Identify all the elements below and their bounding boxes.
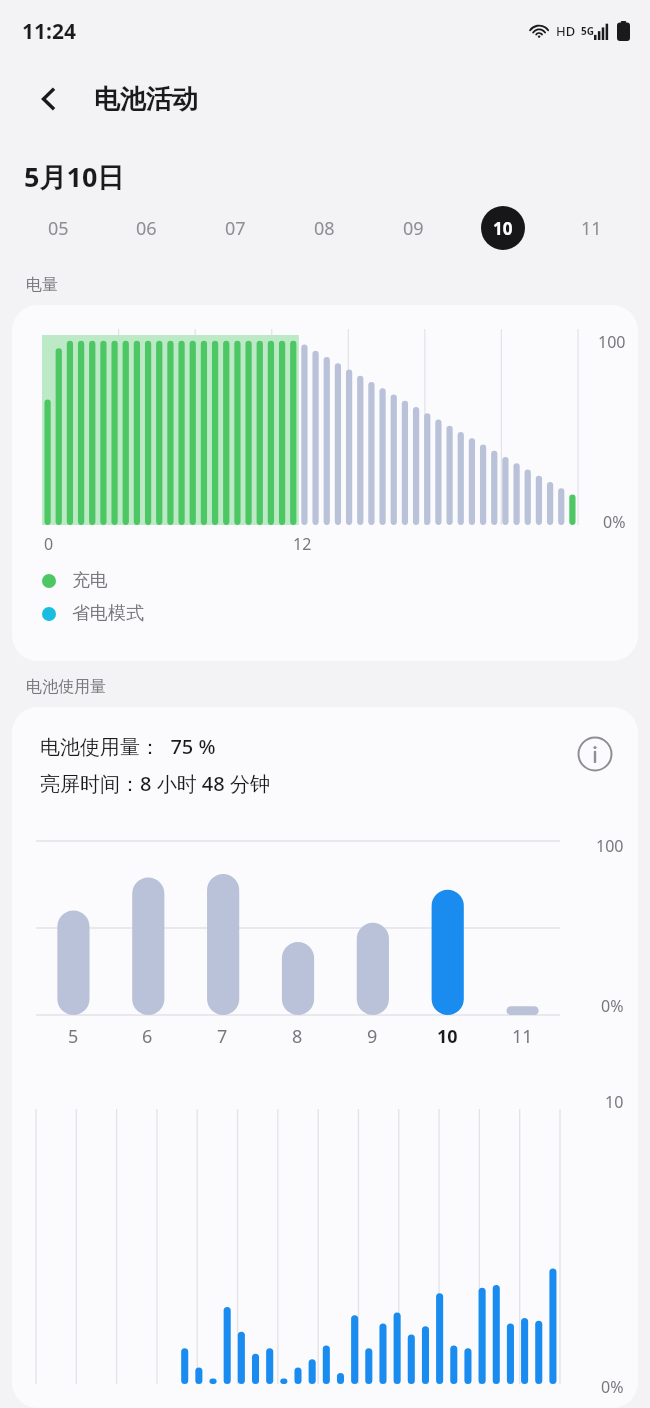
staticText: 5月10日 — [24, 158, 125, 195]
staticText: 100 — [596, 835, 624, 857]
staticText: 8 — [292, 1024, 303, 1049]
staticText: 电池使用量 — [26, 677, 106, 697]
staticText: 5G — [581, 24, 594, 38]
button[interactable]: 10 — [458, 195, 547, 261]
staticText: 亮屏时间：8 小时 48 分钟 — [40, 770, 270, 797]
staticText: 09 — [403, 216, 424, 241]
staticText: 100 — [598, 331, 626, 353]
button[interactable]: 05 — [14, 195, 102, 261]
staticText: 10 — [437, 1024, 458, 1049]
staticText: 10 — [493, 217, 513, 240]
staticText: 电量 — [26, 275, 58, 295]
staticText: 06 — [136, 216, 157, 241]
button[interactable]: Back — [26, 76, 72, 122]
staticText: 充电 — [72, 569, 108, 592]
staticText: 12 — [293, 533, 312, 555]
staticText: 0 — [44, 533, 54, 555]
staticText: 11:24 — [22, 17, 76, 46]
button[interactable]: 06 — [102, 195, 191, 261]
button[interactable]: 09 — [369, 195, 458, 261]
staticText: 11 — [581, 216, 602, 241]
staticText: 9 — [367, 1024, 378, 1049]
staticText: 5 — [68, 1024, 79, 1049]
staticText: 07 — [225, 216, 246, 241]
staticText: 0% — [601, 995, 624, 1017]
staticText: 05 — [48, 216, 69, 241]
button[interactable]: 11 — [547, 195, 636, 261]
button[interactable]: Info — [574, 733, 616, 775]
staticText: 0% — [603, 511, 626, 533]
staticText: 08 — [314, 216, 335, 241]
staticText: 11 — [512, 1024, 533, 1049]
button[interactable]: 07 — [191, 195, 280, 261]
staticText: 6 — [142, 1024, 153, 1049]
staticText: 7 — [217, 1024, 228, 1049]
staticText: HD — [556, 22, 576, 40]
staticText: 0% — [601, 1376, 624, 1398]
staticText: 10 — [605, 1091, 624, 1113]
button[interactable]: 08 — [280, 195, 369, 261]
staticText: 电池活动 — [94, 83, 198, 116]
staticText: 电池使用量： 75 % — [40, 733, 216, 760]
staticText: 省电模式 — [72, 602, 144, 625]
